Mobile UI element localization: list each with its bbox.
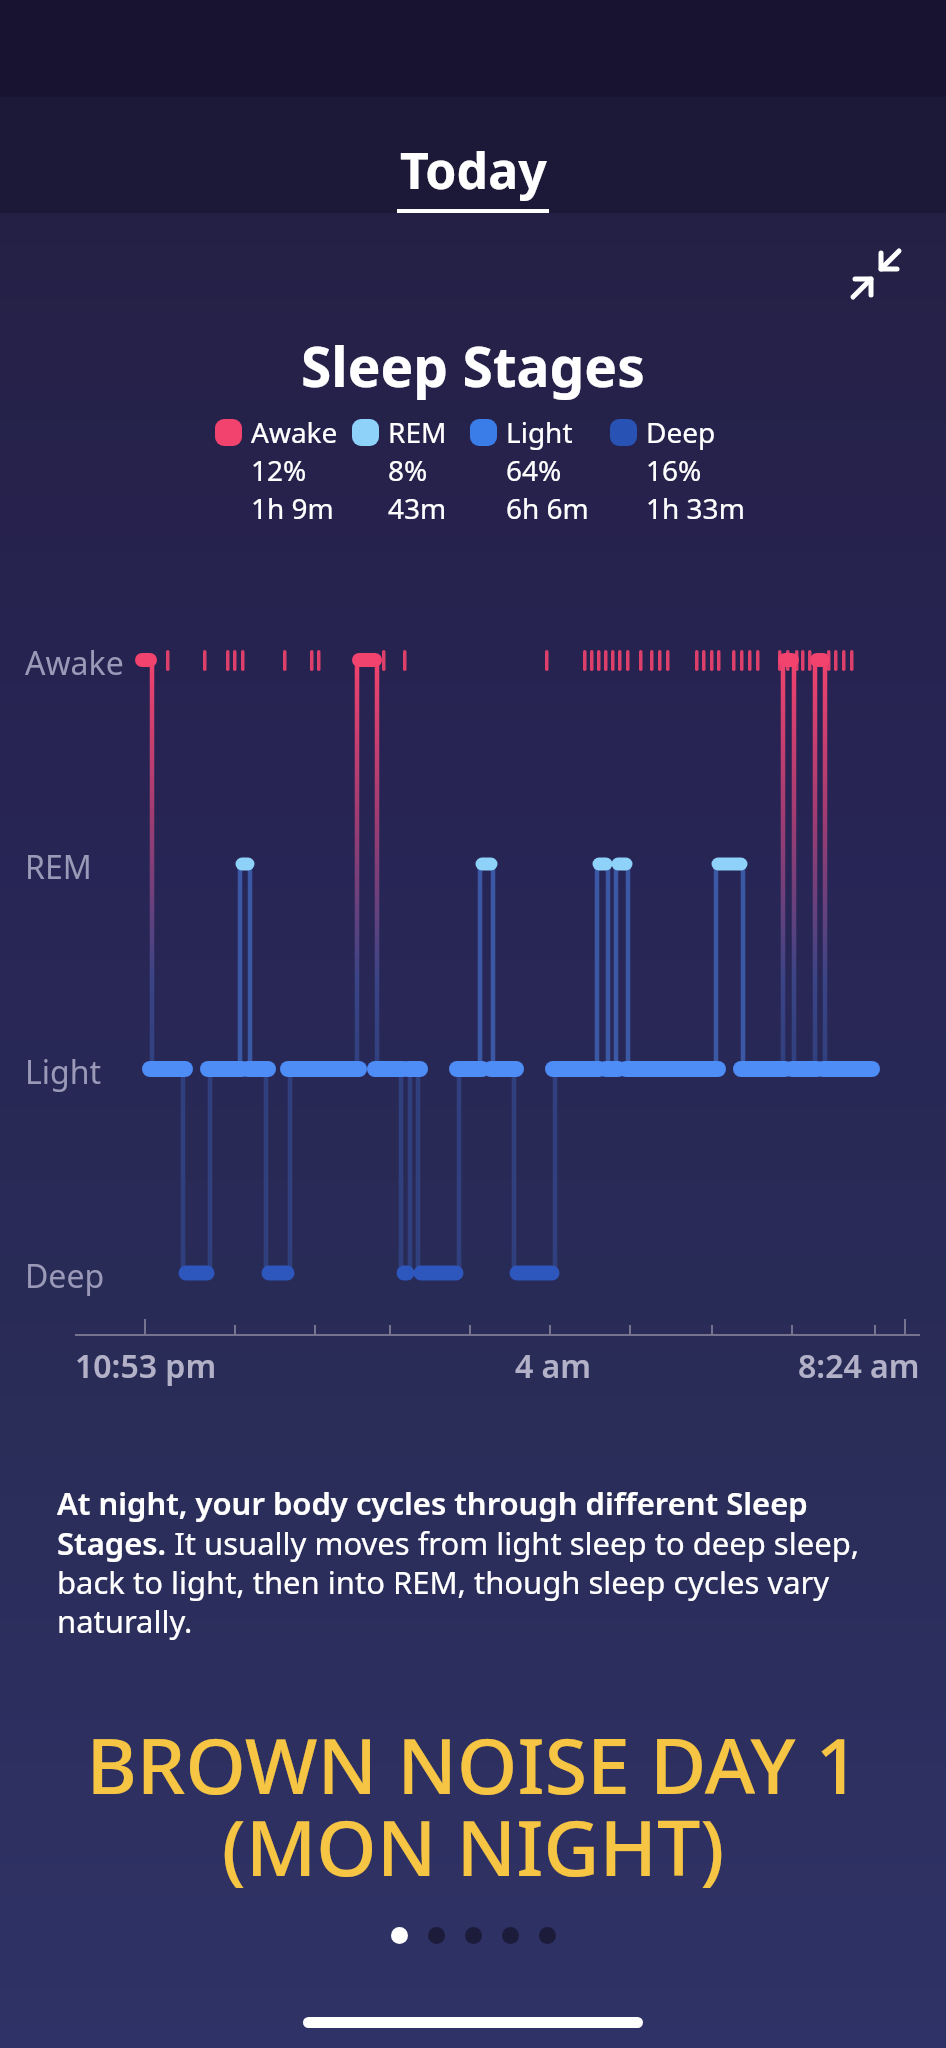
- staticText: REM: [25, 845, 92, 889]
- staticText: 43m: [388, 489, 447, 527]
- staticText: 16%: [646, 451, 702, 489]
- staticText: Sleep Stages: [301, 328, 645, 403]
- staticText: 1h 9m: [251, 489, 334, 527]
- staticText: Deep: [25, 1254, 105, 1298]
- staticText: 1h 33m: [646, 489, 745, 527]
- staticText: BROWN NOISE DAY 1 (MON NIGHT): [86, 1712, 860, 1898]
- staticText: 8:24 am: [798, 1344, 920, 1388]
- staticText: Awake: [251, 413, 338, 451]
- button[interactable]: [391, 1927, 408, 1944]
- staticText: 6h 6m: [506, 489, 589, 527]
- staticText: 12%: [251, 451, 307, 489]
- staticText: REM: [388, 413, 447, 451]
- button[interactable]: [428, 1927, 445, 1944]
- button[interactable]: [465, 1927, 482, 1944]
- staticText: Light: [25, 1050, 102, 1094]
- staticText: At night, your body cycles through diffe…: [57, 1482, 860, 1642]
- staticText: 4 am: [515, 1344, 592, 1388]
- staticText: 8%: [388, 451, 428, 489]
- button[interactable]: [845, 243, 905, 303]
- button[interactable]: [502, 1927, 519, 1944]
- staticText: Awake: [25, 641, 124, 685]
- staticText: Deep: [646, 413, 716, 451]
- staticText: Light: [506, 413, 573, 451]
- button[interactable]: [539, 1927, 556, 1944]
- staticText: Today: [400, 136, 547, 204]
- staticText: 10:53 pm: [75, 1344, 217, 1388]
- staticText: 64%: [506, 451, 562, 489]
